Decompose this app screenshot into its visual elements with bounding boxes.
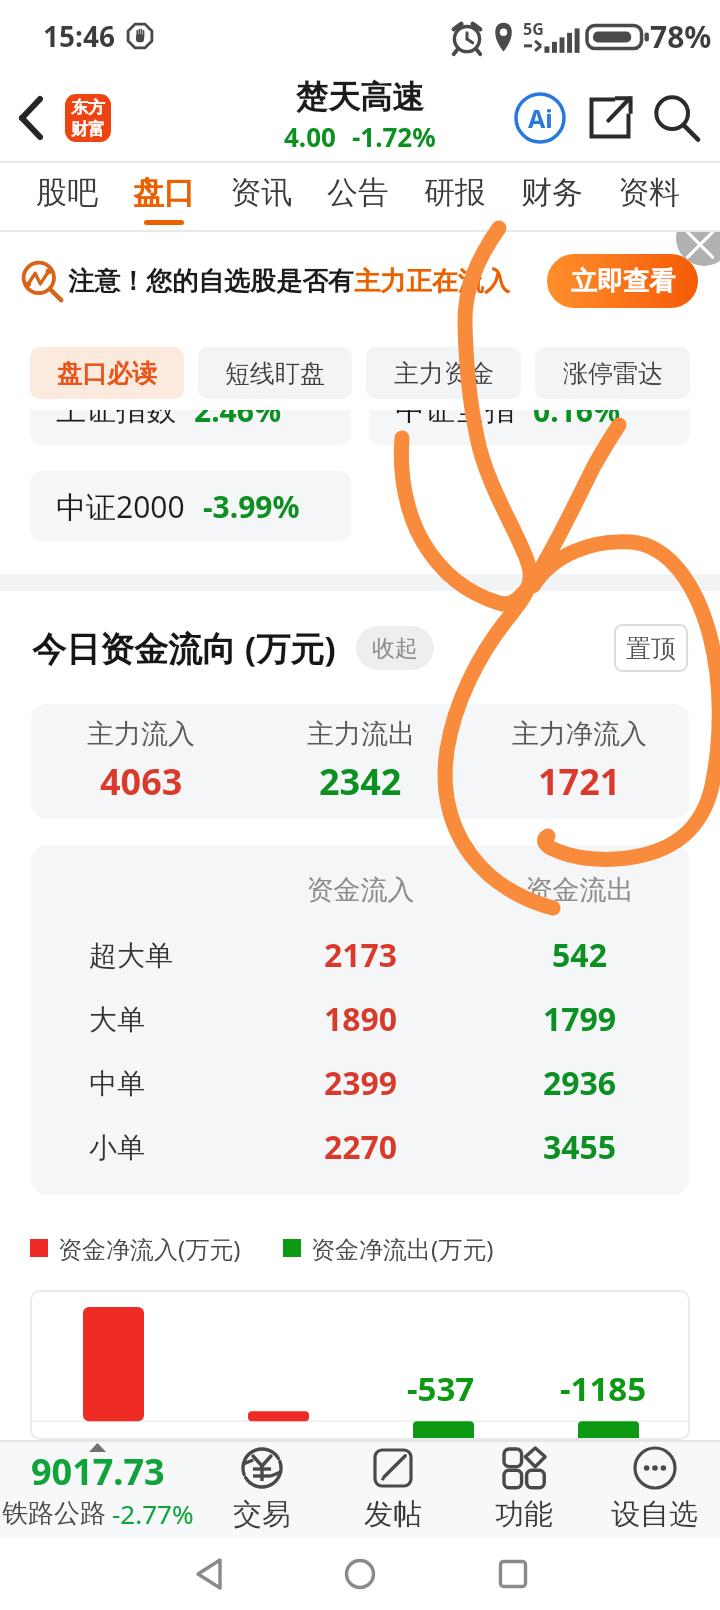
staticText: 资金流入 (251, 873, 470, 907)
button[interactable]: 公告 (309, 163, 406, 232)
staticText: 交易 (233, 1496, 291, 1533)
staticText: -3.99% (203, 486, 300, 527)
button[interactable]: 功能 (458, 1440, 589, 1538)
staticText: 置顶 (626, 633, 676, 664)
staticText: 小单 (89, 1130, 145, 1165)
staticText: 资金流出 (470, 873, 689, 907)
staticText: 上证指数 (56, 410, 176, 429)
staticText: 1799 (470, 997, 689, 1041)
staticText: 2936 (470, 1061, 689, 1105)
button[interactable]: Recents (488, 1549, 538, 1599)
button[interactable]: 收起 (356, 626, 434, 670)
button[interactable]: Back (8, 95, 54, 141)
staticText: 资讯 (230, 173, 292, 212)
staticText: 2399 (251, 1061, 470, 1105)
staticText: 1721 (538, 757, 621, 806)
staticText: 短线盯盘 (225, 358, 325, 389)
staticText: 盘口必读 (57, 358, 157, 389)
staticText: 财富 (71, 119, 105, 140)
button[interactable]: 涨停雷达 (535, 347, 690, 399)
button[interactable]: 股吧 (19, 163, 115, 232)
button[interactable]: 资讯 (212, 163, 309, 232)
button[interactable]: 中证全指 (369, 410, 690, 445)
button[interactable]: 设自选 (589, 1440, 720, 1538)
staticText: 2173 (251, 933, 470, 977)
staticText: 中证全指 (395, 410, 515, 429)
button[interactable]: East Money home (65, 94, 111, 142)
button[interactable]: 上证指数 (30, 410, 351, 445)
staticText: -2.77% (112, 1496, 194, 1531)
staticText: 资金净流出(万元) (311, 1232, 494, 1265)
staticText: 盘口 (133, 173, 195, 212)
button[interactable]: 立即查看 (547, 254, 698, 308)
staticText: 5G (523, 18, 544, 40)
staticText: 主力流出 (307, 717, 415, 751)
button[interactable]: 短线盯盘 (198, 347, 352, 399)
staticText: -1.72% (352, 119, 436, 154)
button[interactable]: 盘口 (115, 163, 212, 232)
staticText: 大单 (89, 1002, 145, 1037)
button[interactable]: Back (185, 1549, 235, 1599)
staticText: 中单 (89, 1066, 145, 1101)
button[interactable]: 置顶 (614, 624, 688, 672)
button[interactable]: Close banner (676, 232, 720, 266)
staticText: 超大单 (89, 938, 173, 973)
staticText: 2.46% (194, 410, 281, 431)
button[interactable]: 发帖 (327, 1440, 458, 1538)
staticText: 主力流入 (87, 717, 195, 751)
staticText: 设自选 (611, 1496, 698, 1533)
staticText: 注意！您的自选股是否有 (68, 265, 354, 298)
button[interactable]: 中证2000 (30, 471, 351, 541)
staticText: 铁路公路 (2, 1497, 106, 1530)
staticText: 立即查看 (571, 265, 675, 298)
staticText: 功能 (495, 1496, 553, 1533)
staticText: 78% (650, 16, 712, 57)
staticText: 收起 (372, 634, 418, 663)
staticText: 中证2000 (56, 486, 185, 527)
staticText: 15:46 (43, 17, 115, 55)
staticText: 东方 (71, 97, 105, 118)
button[interactable]: 主力资金 (366, 347, 521, 399)
staticText: 主力净流入 (512, 717, 647, 751)
button[interactable]: 盘口必读 (30, 347, 184, 399)
staticText: -1185 (560, 1366, 647, 1411)
staticText: 1890 (251, 997, 470, 1041)
button[interactable]: 资料 (600, 163, 697, 232)
staticText: 4.00 (284, 119, 336, 154)
staticText: 0.16% (533, 410, 620, 431)
button[interactable]: 财务 (503, 163, 600, 232)
button[interactable]: Home (335, 1549, 385, 1599)
staticText: 资料 (618, 173, 680, 212)
staticText: 542 (470, 933, 689, 977)
button[interactable]: 研报 (406, 163, 503, 232)
staticText: 楚天高速 (296, 77, 424, 117)
button[interactable]: Search (648, 90, 704, 146)
staticText: 9017.73 (31, 1447, 165, 1496)
button[interactable]: AI assistant (512, 90, 568, 146)
staticText: 股吧 (36, 173, 98, 212)
staticText: 今日资金流向 (万元) (32, 625, 336, 671)
staticText: 资金净流入(万元) (58, 1232, 241, 1265)
staticText: 涨停雷达 (563, 358, 663, 389)
button[interactable]: 9017.73 (0, 1440, 196, 1538)
staticText: 公告 (327, 173, 389, 212)
staticText: 2270 (251, 1125, 470, 1169)
staticText: 3455 (470, 1125, 689, 1169)
staticText: 研报 (424, 173, 486, 212)
staticText: 财务 (521, 173, 583, 212)
staticText: 4063 (100, 757, 183, 806)
staticText: 发帖 (364, 1496, 422, 1533)
staticText: -537 (407, 1366, 475, 1411)
staticText: 主力资金 (394, 358, 494, 389)
staticText: Ai (528, 101, 553, 135)
button[interactable]: Share (582, 90, 638, 146)
staticText: 主力正在流入 (354, 265, 510, 298)
button[interactable]: 交易 (196, 1440, 327, 1538)
staticText: 2342 (319, 757, 402, 806)
